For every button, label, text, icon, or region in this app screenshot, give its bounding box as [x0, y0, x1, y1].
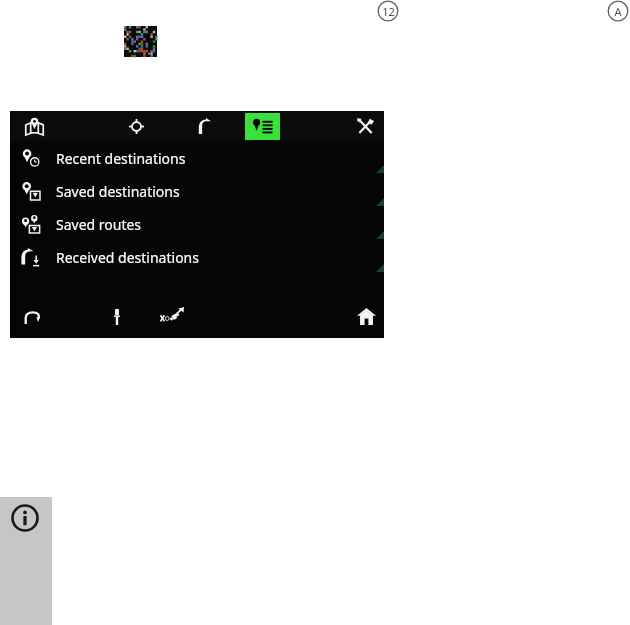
button[interactable]: Current position	[120, 114, 152, 138]
staticText: Recent destinations	[56, 149, 186, 168]
button[interactable]: Map	[18, 114, 50, 138]
button[interactable]: Saved destinations	[10, 174, 384, 207]
button[interactable]: Received destinations	[10, 240, 384, 273]
button[interactable]: Voice control	[102, 305, 132, 329]
button[interactable]: No GPS signal	[155, 303, 189, 329]
staticText: 12	[382, 4, 395, 19]
staticText: Saved routes	[56, 215, 142, 234]
button[interactable]: Saved routes	[10, 207, 384, 240]
button[interactable]: Route guidance	[188, 114, 220, 138]
button[interactable]: Destinations	[245, 113, 280, 140]
staticText: A	[614, 4, 622, 19]
staticText: Saved destinations	[56, 182, 180, 201]
button[interactable]: Back	[16, 305, 46, 329]
button[interactable]: Home	[350, 303, 382, 329]
button[interactable]: Recent destinations	[10, 141, 384, 174]
button[interactable]: Settings	[350, 114, 380, 138]
staticText: Received destinations	[56, 248, 199, 267]
